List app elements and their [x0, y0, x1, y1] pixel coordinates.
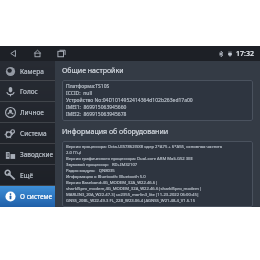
staticText: MARLIN3_20A_W22.47.3|uc2355_marlin3_lite…	[66, 192, 200, 198]
staticText: Звуковой процессор: RD+IM32107	[66, 162, 138, 168]
button[interactable]: Заводские	[0, 144, 55, 165]
staticText: Информация о Bluetooth: Bluetooth 5.0	[66, 174, 146, 180]
staticText: Ещё	[20, 171, 34, 180]
staticText: sharkl5pro_modem,4G_MODEM_32A_W22.46.6|s…	[66, 186, 202, 192]
staticText: GNSS_20BL_W22.49.3 FL_22B_W23.06.4|AGNSS…	[66, 198, 196, 204]
staticText: Платформа:TS10S	[66, 83, 110, 90]
button[interactable]: Камера	[0, 61, 55, 81]
button[interactable]: Голос	[0, 81, 55, 102]
staticText: Версия процессора: Octa-UIS7862(S)(8 яде…	[66, 144, 223, 150]
staticText: Устройство No:04D1014952414364d102b263ed…	[66, 97, 193, 104]
staticText: 17:32	[236, 49, 254, 59]
staticText: Заводские	[20, 150, 54, 159]
button[interactable]: Личное	[0, 102, 55, 123]
staticText: IMEI1: 869915063945660	[66, 104, 127, 111]
staticText: Версия графического процессора: Dual-cor…	[66, 156, 193, 162]
staticText: Личное	[20, 108, 44, 117]
button[interactable]: Home	[31, 47, 44, 60]
staticText: Система	[20, 129, 47, 138]
staticText: Камера	[20, 67, 44, 76]
staticText: Голос	[20, 87, 38, 96]
button[interactable]: Ещё	[0, 165, 55, 186]
button[interactable]: Система	[0, 123, 55, 144]
button[interactable]: Recents	[55, 47, 68, 60]
staticText: 2.0 ГГц)	[66, 150, 81, 156]
button[interactable]: Back	[7, 47, 20, 60]
staticText: Информация об оборудовании	[62, 127, 169, 137]
staticText: Версия Baseband:4G_MODEM_32A_W22.46.6|	[66, 180, 158, 186]
button[interactable]: О системе	[0, 186, 55, 207]
staticText: IMEI2: 869915063945678	[66, 111, 127, 118]
staticText: ICCID: null	[66, 90, 92, 97]
staticText: Радио модуль: QN8035	[66, 168, 115, 174]
staticText: Общие настройки	[62, 66, 124, 76]
staticText: О системе	[20, 192, 53, 201]
